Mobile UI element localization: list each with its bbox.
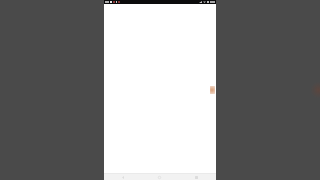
button[interactable]: Recents — [178, 174, 215, 180]
